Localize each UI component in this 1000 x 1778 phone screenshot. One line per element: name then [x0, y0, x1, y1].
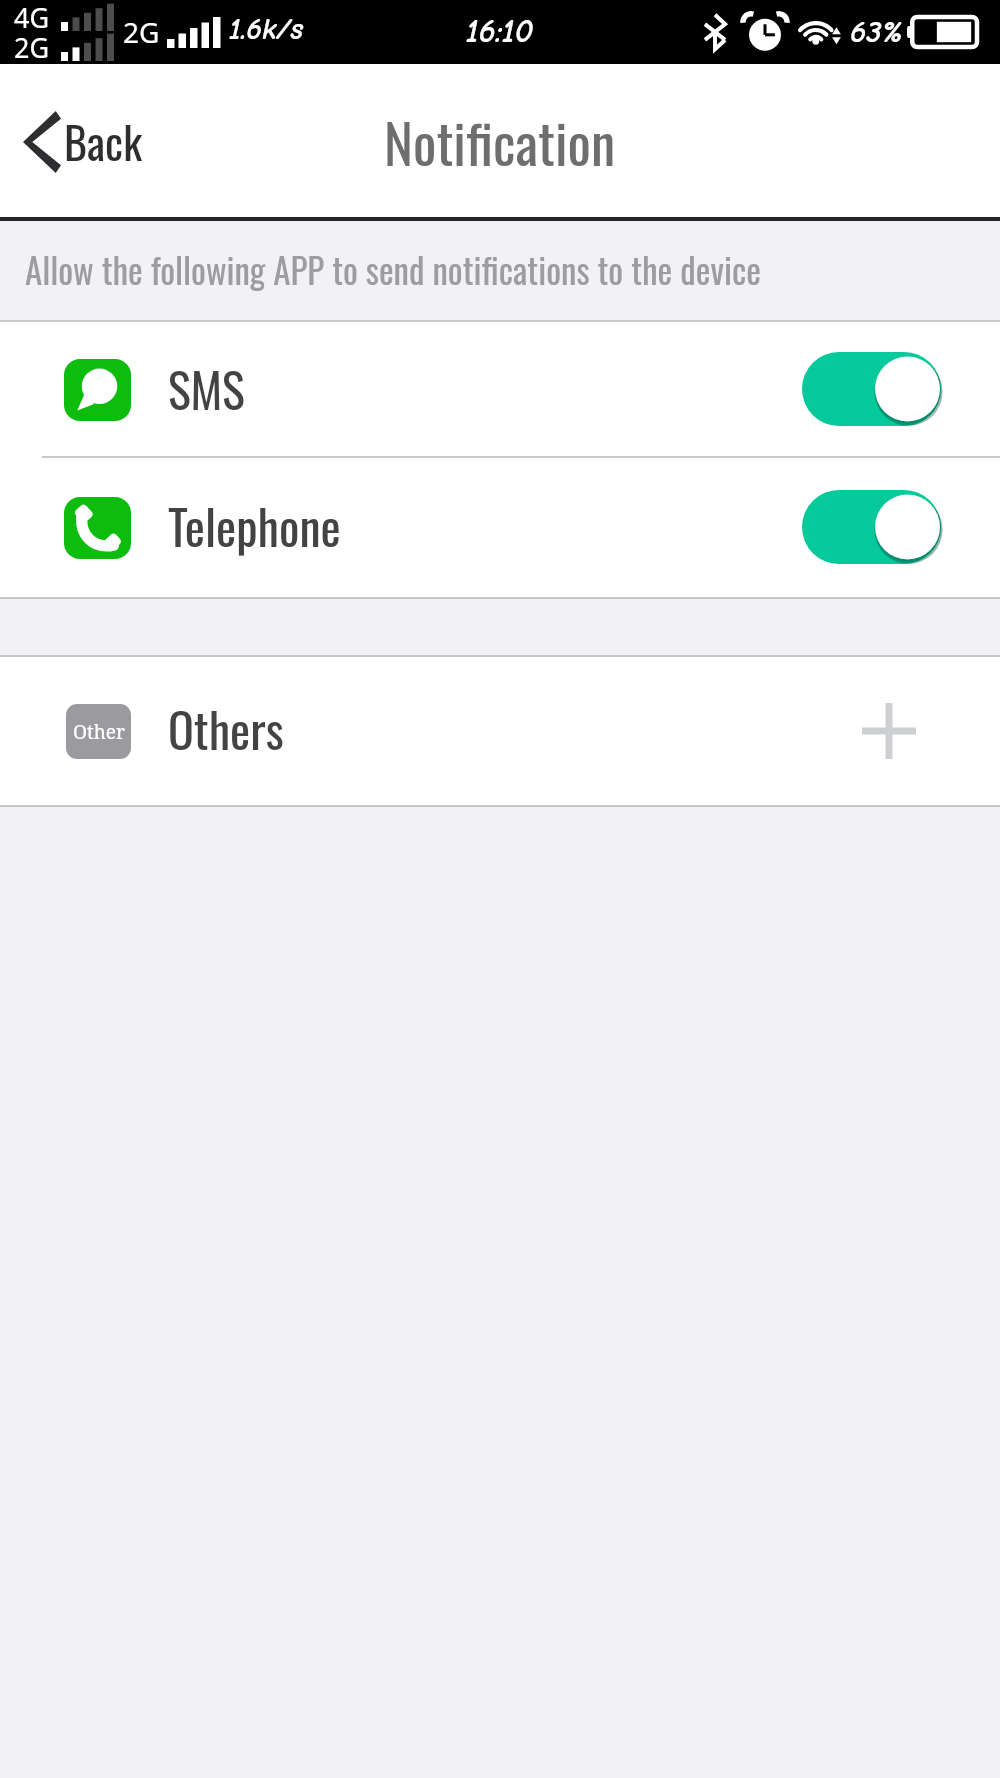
button[interactable]: SMS: [0, 322, 1000, 458]
staticText: Allow the following APP to send notifica…: [25, 243, 761, 295]
button[interactable]: Back: [0, 83, 165, 203]
staticText: Others: [168, 693, 284, 764]
button[interactable]: Toggle notification: [802, 490, 941, 566]
staticText: 63%: [850, 14, 903, 50]
staticText: 2G: [123, 13, 160, 51]
button[interactable]: Add application: [861, 703, 917, 759]
button[interactable]: Toggle notification: [802, 352, 941, 428]
staticText: 4G: [14, 0, 50, 36]
staticText: Other: [73, 719, 125, 745]
staticText: 2G: [14, 29, 50, 66]
staticText: Back: [64, 109, 143, 174]
staticText: Telephone: [168, 490, 341, 561]
button[interactable]: Other: [0, 657, 1000, 805]
staticText: Notification: [384, 100, 616, 182]
staticText: 16:10: [466, 13, 534, 50]
staticText: 1.6k/s: [229, 12, 304, 47]
button[interactable]: Telephone: [0, 458, 1000, 597]
staticText: SMS: [168, 353, 245, 424]
